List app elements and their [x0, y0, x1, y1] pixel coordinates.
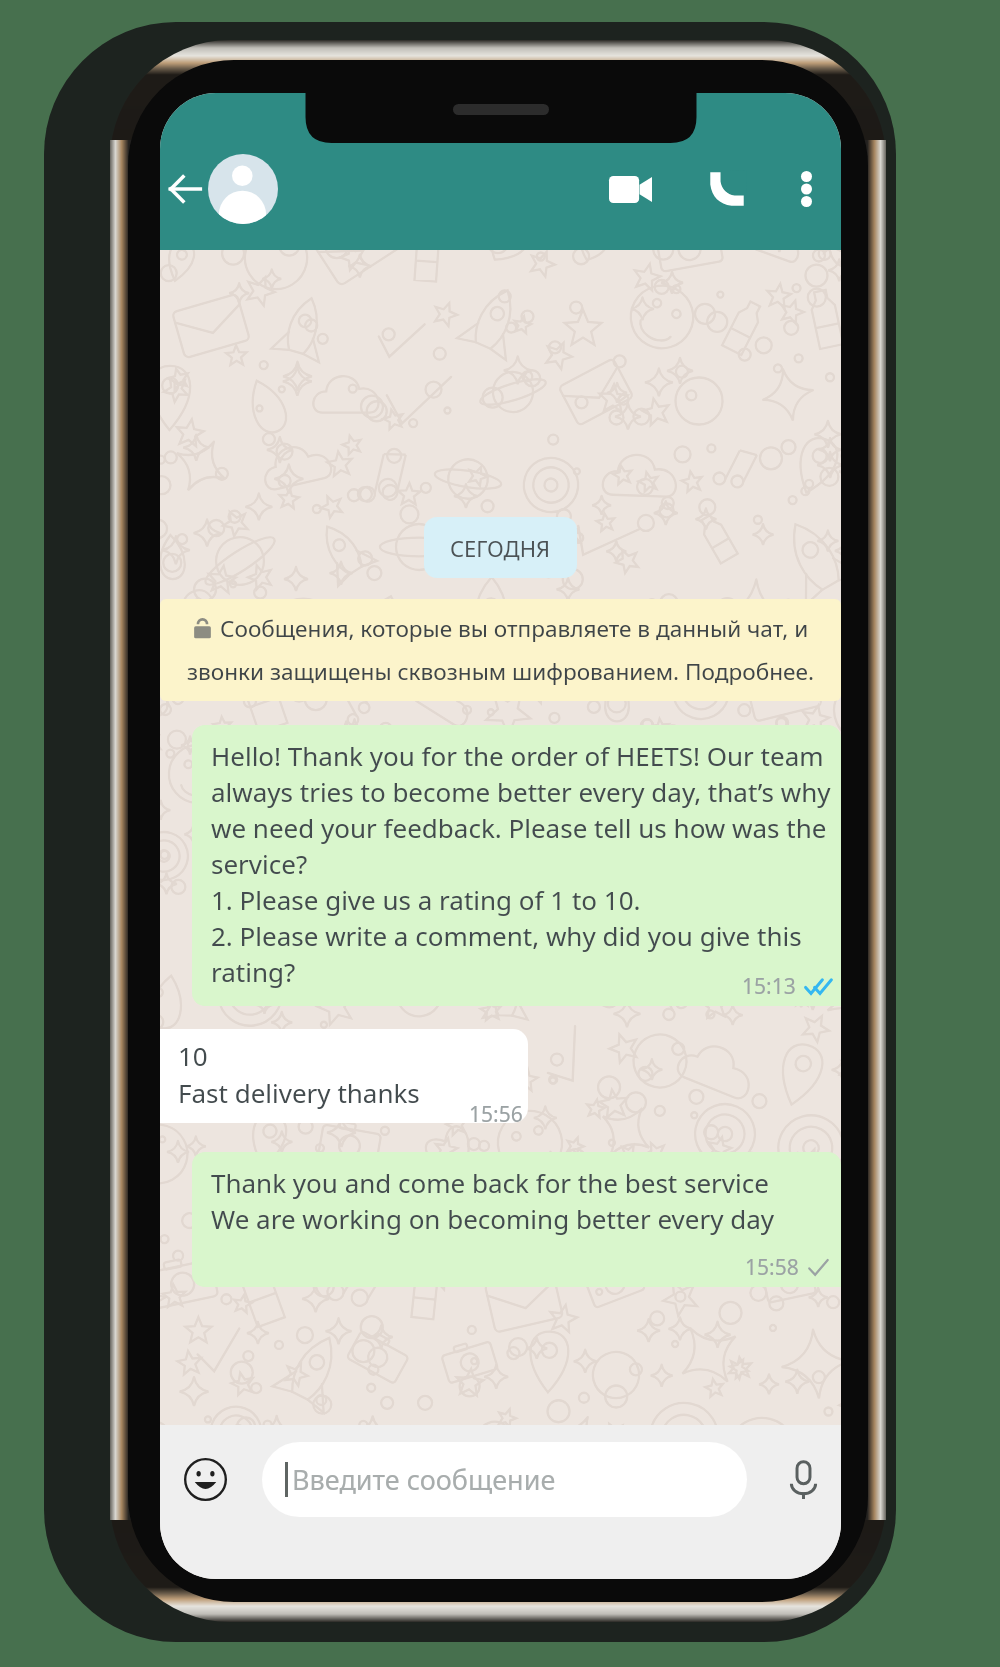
- button[interactable]: Voice message: [767, 1425, 839, 1534]
- button[interactable]: More options: [774, 151, 838, 227]
- staticText: 10 Fast delivery thanks: [178, 1038, 420, 1111]
- staticText: Hello! Thank you for the order of HEETS!…: [211, 738, 836, 990]
- button[interactable]: 10 Fast delivery thanks: [160, 1029, 528, 1123]
- button[interactable]: Video call: [580, 151, 680, 227]
- staticText: СЕГОДНЯ: [450, 533, 551, 563]
- staticText: Введите сообщение: [292, 1461, 556, 1498]
- staticText: Сообщения, которые вы отправляете в данн…: [220, 613, 809, 644]
- button[interactable]: Введите сообщение: [262, 1442, 747, 1517]
- button[interactable]: Hello! Thank you for the order of HEETS!…: [192, 725, 841, 1006]
- button[interactable]: СЕГОДНЯ: [424, 517, 577, 578]
- button[interactable]: Contact profile: [208, 154, 278, 224]
- button[interactable]: Сообщения, которые вы отправляете в данн…: [160, 599, 841, 701]
- button[interactable]: Back: [164, 154, 205, 224]
- button[interactable]: Emoji: [166, 1425, 244, 1534]
- staticText: 15:56: [469, 1100, 523, 1123]
- staticText: Thank you and come back for the best ser…: [211, 1165, 775, 1237]
- button[interactable]: Voice call: [680, 151, 774, 227]
- staticText: 15:58: [745, 1253, 799, 1282]
- button[interactable]: Thank you and come back for the best ser…: [192, 1152, 841, 1287]
- staticText: 15:13: [742, 972, 796, 1001]
- staticText: звонки защищены сквозным шифрованием. По…: [187, 656, 814, 687]
